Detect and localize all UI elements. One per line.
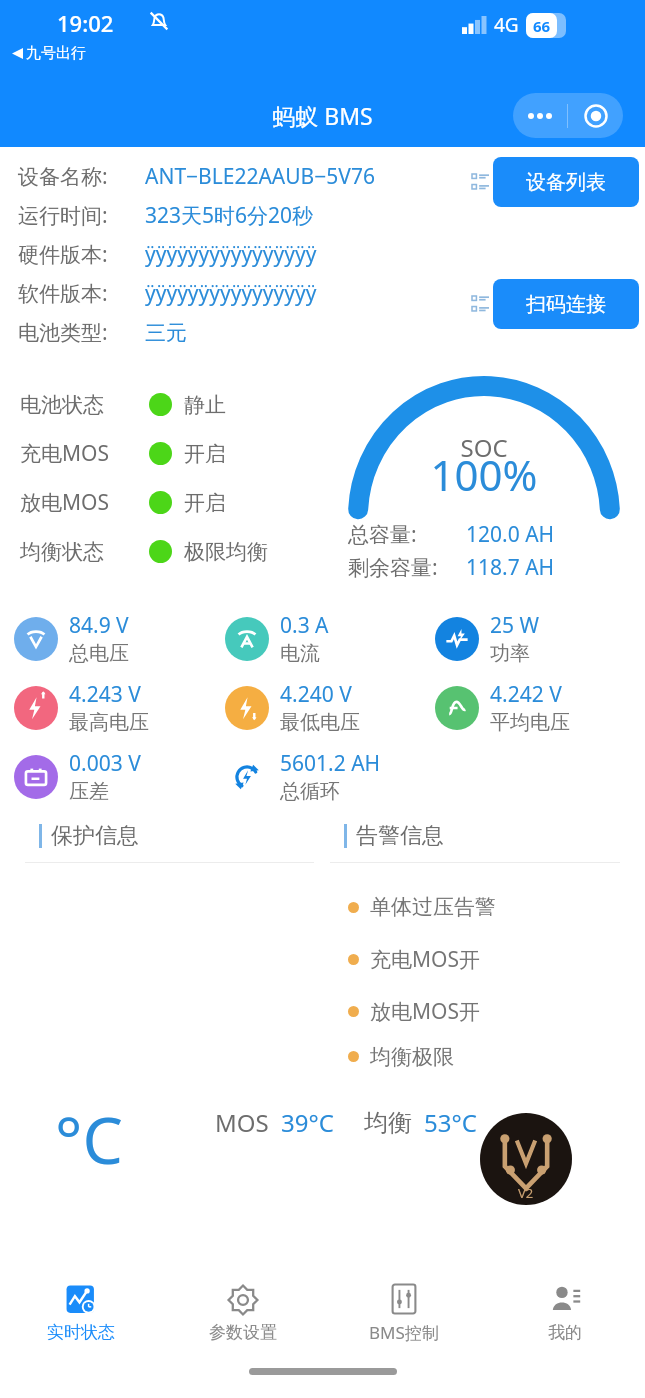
staticText: 压差 [69, 779, 109, 804]
button[interactable]: 4.243 V [14, 680, 225, 735]
button[interactable]: °C [25, 1084, 620, 1204]
staticText: V2 [518, 1184, 534, 1202]
staticText: 25 W [490, 611, 540, 640]
button[interactable]: 84.9 V [14, 611, 225, 666]
staticText: 蚂蚁 BMS [0, 100, 645, 131]
staticText: 开启 [184, 490, 226, 516]
staticText: 参数设置 [209, 1322, 277, 1343]
staticText: 充电MOS [20, 439, 149, 468]
staticText: 5601.2 AH [280, 749, 381, 778]
staticText: 单体过压告警 [370, 894, 496, 920]
button[interactable]: 设备列表 [493, 157, 639, 207]
staticText: 剩余容量: [348, 553, 466, 582]
staticText: 告警信息 [356, 822, 444, 850]
staticText: 极限均衡 [184, 539, 268, 565]
staticText: 电池状态 [20, 392, 149, 418]
staticText: ÿÿÿÿÿÿÿÿÿÿÿÿÿÿÿÿ [145, 240, 317, 269]
staticText: 设备名称: [18, 162, 145, 191]
staticText: 120.0 AH [466, 520, 555, 549]
staticText: 总电压 [69, 641, 129, 666]
button[interactable]: 九号出行 [12, 44, 86, 63]
button[interactable]: V2 badge [480, 1113, 572, 1205]
staticText: 扫码连接 [526, 292, 606, 317]
staticText: 放电MOS [20, 488, 149, 517]
button[interactable]: 告警信息 [330, 810, 620, 1076]
staticText: 39°C [281, 1106, 334, 1139]
staticText: 19:02 [57, 8, 114, 38]
button[interactable]: 0.003 V [14, 749, 225, 804]
button[interactable]: 25 W [435, 611, 645, 666]
button[interactable]: 4.240 V [225, 680, 435, 735]
staticText: 三元 [145, 320, 187, 346]
staticText: 我的 [548, 1322, 582, 1343]
staticText: 0.003 V [69, 749, 141, 778]
staticText: 静止 [184, 392, 226, 418]
staticText: 软件版本: [18, 279, 145, 308]
staticText: 放电MOS开 [370, 997, 480, 1026]
staticText: 保护信息 [51, 822, 139, 850]
staticText: 84.9 V [69, 611, 129, 640]
staticText: 0.3 A [280, 611, 329, 640]
button[interactable]: 我的 [484, 1264, 645, 1360]
staticText: 4.242 V [490, 680, 562, 709]
staticText: °C [55, 1096, 123, 1183]
staticText: MOS [215, 1106, 269, 1139]
button[interactable]: Target [568, 93, 623, 138]
staticText: 4.240 V [280, 680, 352, 709]
staticText: 最高电压 [69, 710, 149, 735]
button[interactable]: 扫码连接 [493, 279, 639, 329]
staticText: SOC [348, 431, 620, 464]
staticText: 均衡 [364, 1108, 412, 1138]
staticText: 电池类型: [18, 318, 145, 347]
staticText: 实时状态 [47, 1322, 115, 1343]
staticText: 平均电压 [490, 710, 570, 735]
staticText: 总循环 [280, 779, 340, 804]
staticText: 53°C [424, 1106, 477, 1139]
staticText: 电流 [280, 641, 320, 666]
button[interactable]: 保护信息 [25, 810, 314, 1076]
staticText: BMS控制 [369, 1321, 439, 1344]
staticText: 硬件版本: [18, 240, 145, 269]
staticText: 开启 [184, 441, 226, 467]
button[interactable]: 参数设置 [162, 1264, 323, 1360]
button[interactable]: BMS控制 [323, 1264, 484, 1360]
staticText: 323天5时6分20秒 [145, 201, 314, 230]
staticText: 4G [494, 12, 519, 38]
staticText: 66 [533, 16, 551, 36]
button[interactable]: 实时状态 [0, 1264, 162, 1360]
staticText: 4.243 V [69, 680, 141, 709]
staticText: 九号出行 [26, 44, 86, 63]
button[interactable]: More options [513, 93, 567, 138]
staticText: ÿÿÿÿÿÿÿÿÿÿÿÿÿÿÿÿ [145, 279, 317, 308]
staticText: 最低电压 [280, 710, 360, 735]
button[interactable]: 4.242 V [435, 680, 645, 735]
staticText: ANT−BLE22AAUB−5V76 [145, 162, 375, 191]
staticText: 充电MOS开 [370, 945, 480, 974]
staticText: 运行时间: [18, 201, 145, 230]
staticText: 均衡极限 [370, 1044, 454, 1070]
button[interactable]: 0.3 A [225, 611, 435, 666]
staticText: 总容量: [348, 520, 466, 549]
button[interactable]: 5601.2 AH [225, 749, 435, 804]
staticText: 设备列表 [526, 170, 606, 195]
staticText: 100% [348, 446, 620, 503]
staticText: 118.7 AH [466, 553, 555, 582]
staticText: 均衡状态 [20, 539, 149, 565]
staticText: 功率 [490, 641, 530, 666]
